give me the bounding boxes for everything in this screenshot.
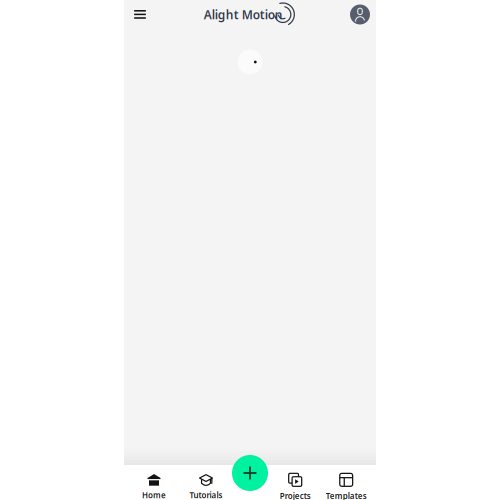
- button[interactable]: Create new project: [232, 455, 268, 491]
- button[interactable]: Menu: [128, 1, 152, 27]
- button[interactable]: Home: [124, 465, 184, 500]
- staticText: Tutorials: [189, 490, 222, 500]
- staticText: Home: [142, 490, 166, 500]
- button[interactable]: Profile: [348, 1, 372, 27]
- button[interactable]: Tutorials: [184, 465, 228, 500]
- staticText: Alight Motion: [204, 6, 283, 22]
- button[interactable]: Templates: [316, 465, 376, 500]
- staticText: Templates: [326, 490, 367, 500]
- staticText: Projects: [280, 490, 311, 500]
- button[interactable]: Projects: [274, 465, 316, 500]
